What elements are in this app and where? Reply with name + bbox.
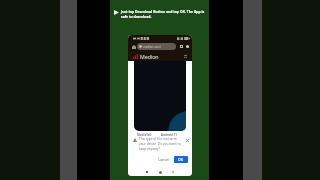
staticText: This type of file can harm your device. … [139,137,181,150]
staticText: Just tap Download Button and tap OK. The… [121,9,206,19]
button[interactable]: Site menu [182,53,188,59]
button[interactable]: OK [174,156,188,163]
button[interactable]: Account [185,44,190,49]
button[interactable]: Tabs [179,44,184,49]
staticText: Android 11 [161,133,178,137]
button[interactable]: Close [184,137,190,143]
button[interactable]: Home [131,44,136,49]
staticText: Cancel [158,157,170,162]
staticText: OK [178,157,184,162]
staticText: medion.com/download [143,45,174,49]
button[interactable]: Recents [169,168,177,176]
button[interactable]: Home [156,168,164,176]
button[interactable]: Cancel [156,156,172,163]
button[interactable]: Back [143,168,151,176]
staticText: MediaTek [137,133,152,137]
staticText: Medion [140,53,159,60]
button[interactable]: medion.com/download [137,43,176,50]
